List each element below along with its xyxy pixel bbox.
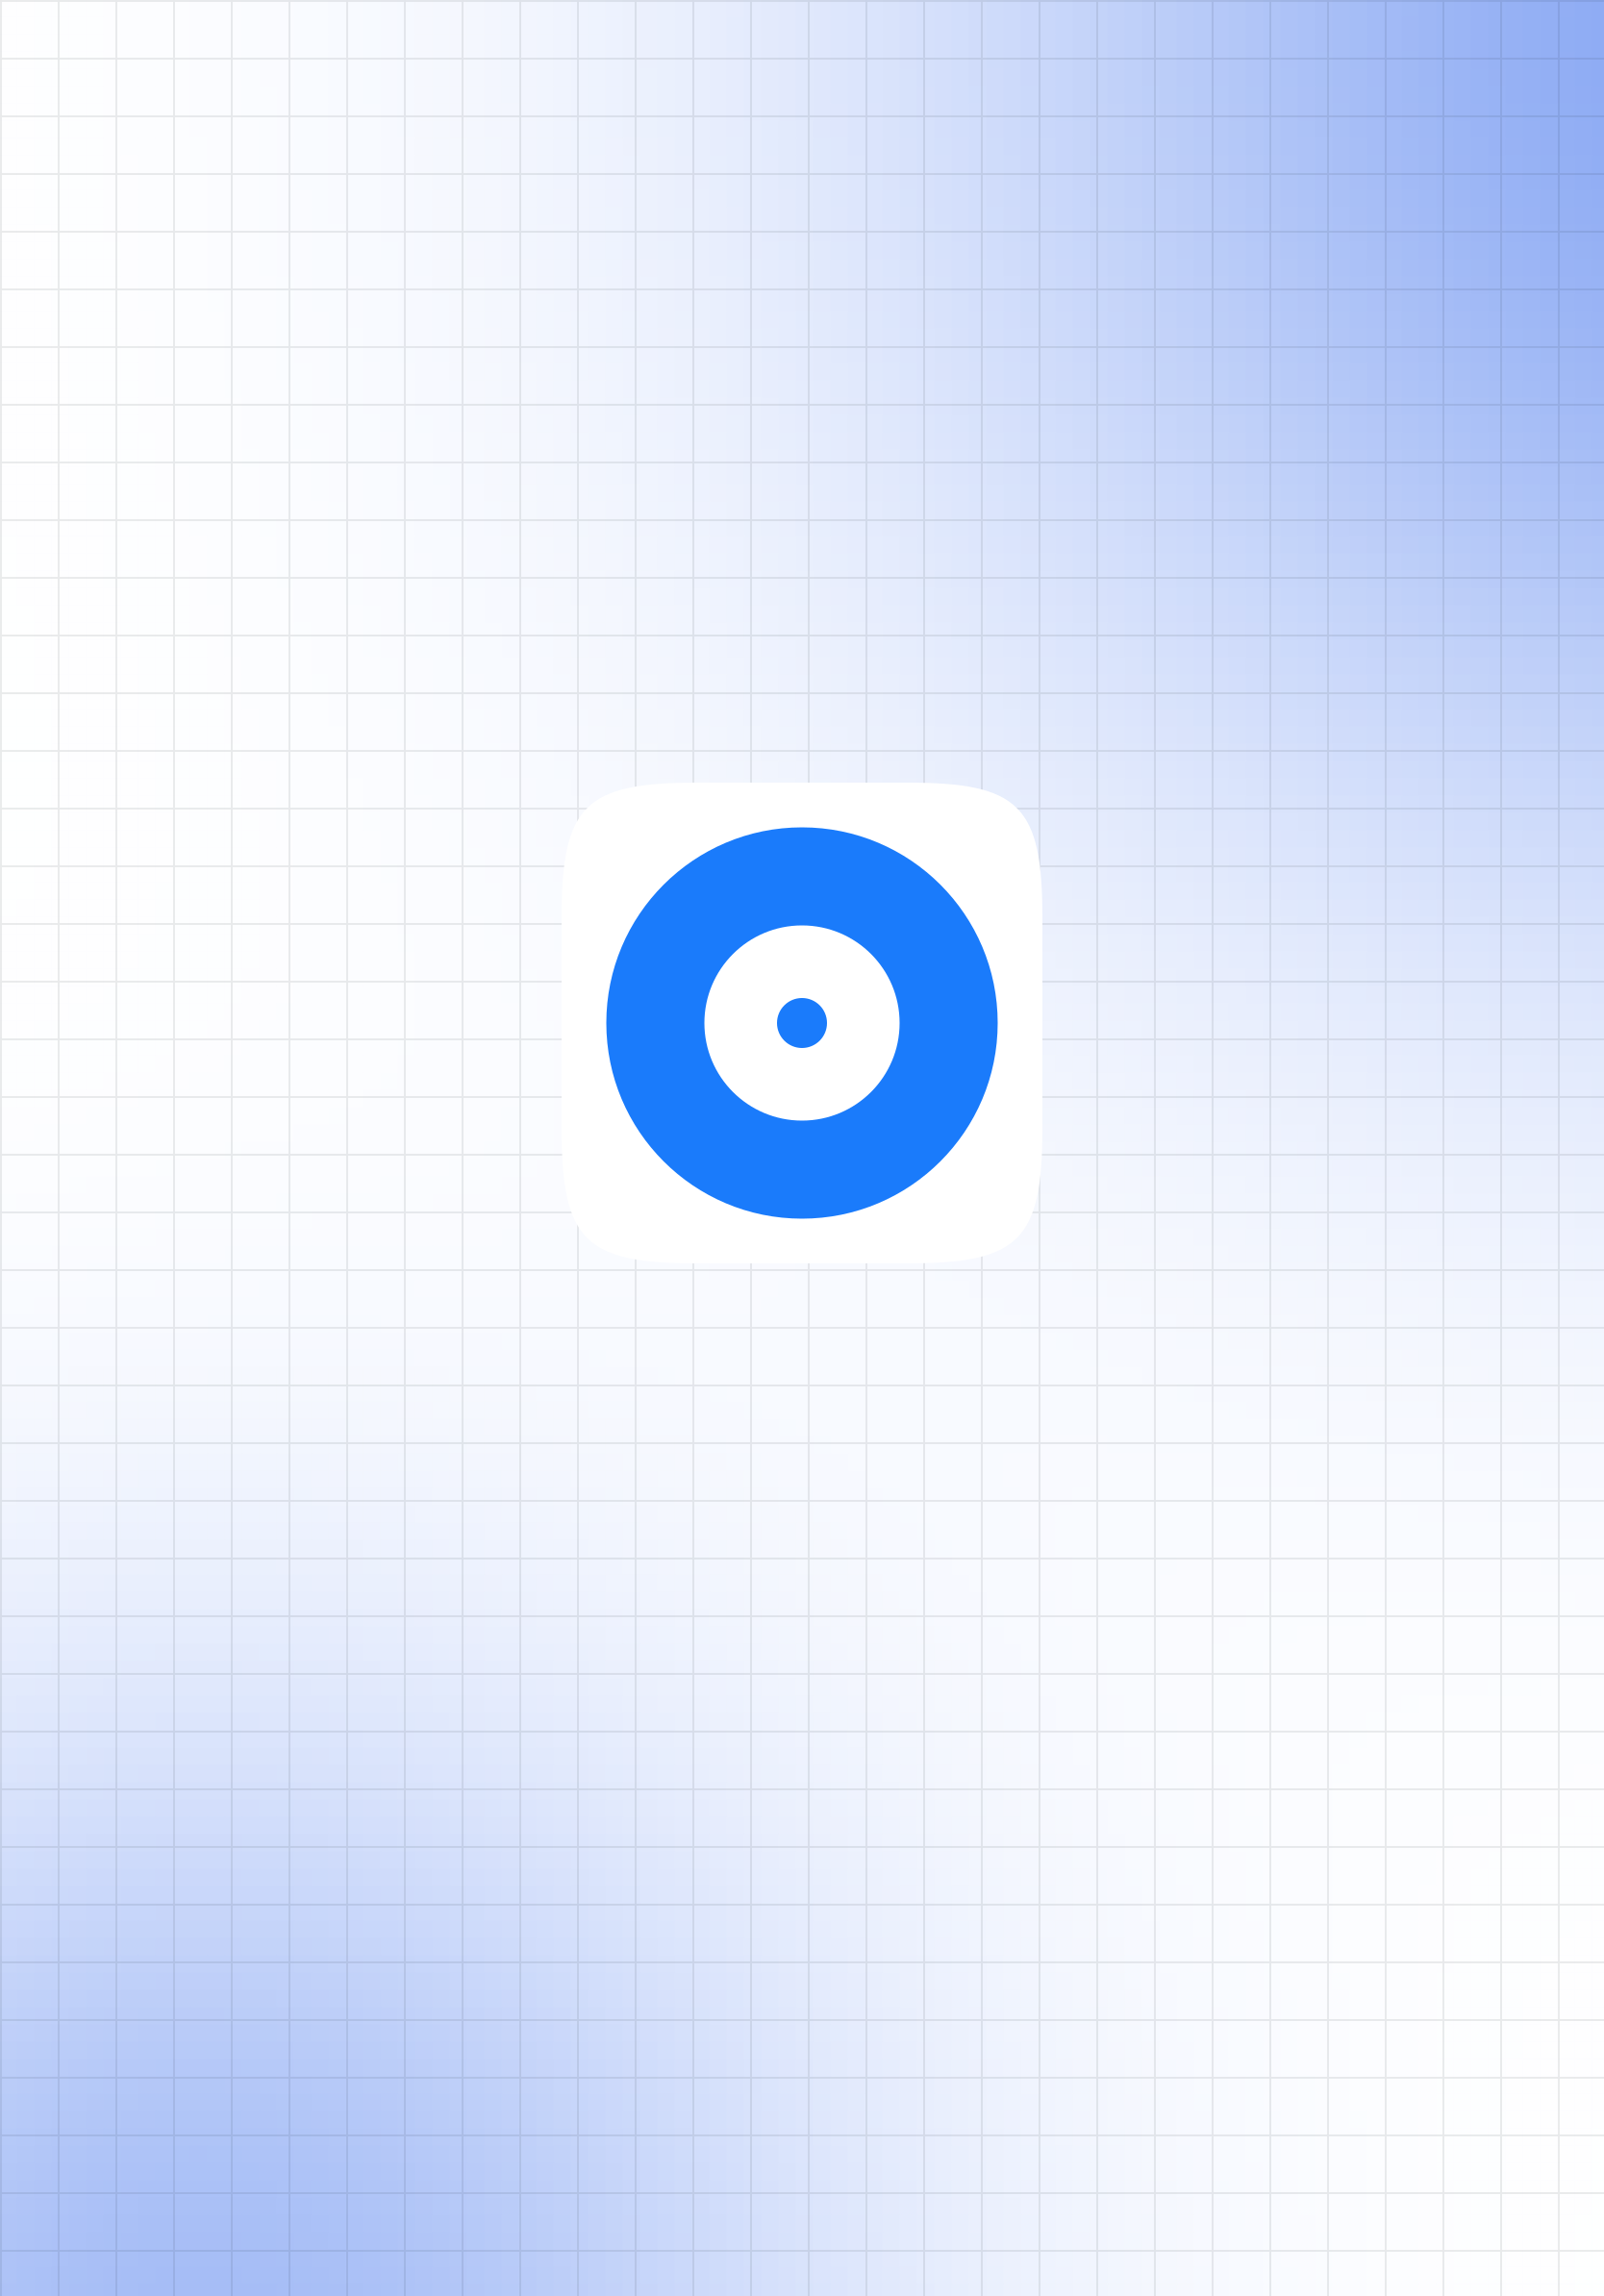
button[interactable]: Open app bbox=[562, 783, 1042, 1263]
